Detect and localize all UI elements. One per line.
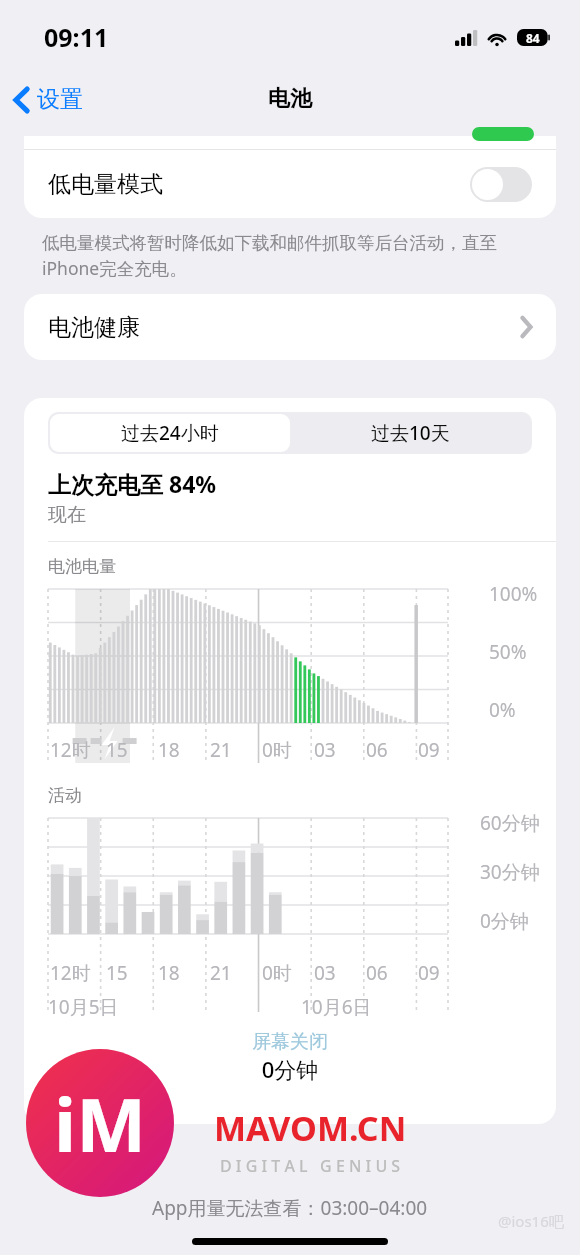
staticText: 过去10天: [371, 420, 450, 446]
staticText: 12时: [50, 960, 91, 986]
staticText: 09: [418, 737, 440, 763]
staticText: 84: [526, 30, 540, 46]
staticText: iM: [54, 1073, 146, 1174]
staticText: 活动: [48, 785, 82, 806]
button[interactable]: 过去24小时: [50, 414, 290, 452]
staticText: 上次充电至 84%: [48, 468, 217, 499]
staticText: 低电量模式将暂时降低如下载和邮件抓取等后台活动，直至 iPhone完全充电。: [42, 232, 497, 280]
staticText: 60分钟: [480, 810, 540, 836]
staticText: 0分钟: [24, 1054, 556, 1084]
button[interactable]: 低电量模式开关: [470, 167, 532, 202]
staticText: 21: [210, 737, 232, 763]
staticText: 电池健康: [48, 313, 140, 342]
button[interactable]: 低电量模式: [24, 150, 556, 218]
staticText: MAVOM.CN: [214, 1105, 407, 1151]
staticText: 过去24小时: [121, 420, 219, 446]
staticText: 18: [158, 737, 180, 763]
staticText: 15: [106, 737, 128, 763]
staticText: 30分钟: [480, 859, 540, 885]
staticText: 10月5日: [48, 994, 119, 1020]
staticText: 低电量模式: [48, 170, 163, 199]
button[interactable]: 设置: [0, 79, 95, 120]
staticText: 15: [106, 960, 128, 986]
staticText: 设置: [37, 85, 83, 114]
staticText: D I G I T A L G E N I U S: [220, 1155, 401, 1177]
staticText: 0时: [262, 960, 292, 986]
button[interactable]: 过去10天: [290, 414, 530, 452]
button[interactable]: 电池健康: [24, 294, 556, 360]
staticText: App用量无法查看：03:00–04:00: [152, 1195, 428, 1221]
staticText: 06: [366, 960, 388, 986]
staticText: 电池: [268, 85, 312, 113]
staticText: 21: [210, 960, 232, 986]
staticText: 18: [158, 960, 180, 986]
staticText: 100%: [489, 581, 538, 607]
staticText: 03: [314, 737, 336, 763]
staticText: 10月6日: [301, 994, 372, 1020]
staticText: 0%: [489, 697, 516, 723]
staticText: 03: [314, 960, 336, 986]
staticText: 现在: [48, 503, 86, 527]
staticText: 0分钟: [480, 908, 529, 934]
staticText: @ios16吧: [498, 1211, 564, 1231]
staticText: 06: [366, 737, 388, 763]
staticText: 电池电量: [48, 556, 116, 577]
staticText: 50%: [489, 639, 527, 665]
staticText: 09: [418, 960, 440, 986]
staticText: 09:11: [44, 20, 109, 54]
staticText: 0时: [262, 737, 292, 763]
staticText: 屏幕关闭: [24, 1030, 556, 1054]
staticText: 12时: [50, 737, 91, 763]
